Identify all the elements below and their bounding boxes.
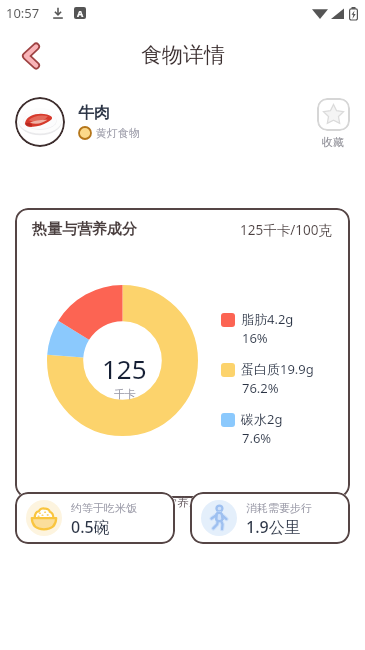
staticText: A — [77, 7, 84, 19]
staticText: 76.2% — [242, 379, 279, 397]
staticText: 脂肪4.2g — [241, 310, 294, 328]
staticText: 16% — [242, 329, 268, 347]
button[interactable]: Back — [9, 34, 53, 78]
staticText: 营养成分 — [165, 494, 213, 509]
button[interactable]: 收藏 — [308, 98, 358, 149]
staticText: 7.6% — [242, 429, 272, 447]
staticText: 约等于吃米饭 — [71, 501, 137, 515]
staticText: 收藏 — [322, 135, 344, 149]
staticText: 食物详情 — [141, 42, 225, 68]
staticText: 千卡 — [114, 387, 136, 401]
staticText: 牛肉 — [78, 103, 110, 123]
staticText: 碳水2g — [241, 410, 283, 428]
staticText: 蛋白质19.9g — [241, 360, 314, 378]
staticText: 黄灯食物 — [96, 126, 140, 140]
staticText: 125 — [102, 351, 147, 386]
staticText: 10:57 — [6, 4, 40, 22]
button[interactable]: 约等于吃米饭 — [15, 492, 175, 544]
staticText: 1.9公里 — [246, 516, 301, 538]
button[interactable]: 消耗需要步行 — [190, 492, 350, 544]
staticText: 热量与营养成分 — [32, 220, 137, 239]
staticText: 125千卡/100克 — [240, 221, 332, 239]
staticText: 消耗需要步行 — [246, 501, 312, 515]
staticText: 0.5碗 — [71, 516, 110, 538]
